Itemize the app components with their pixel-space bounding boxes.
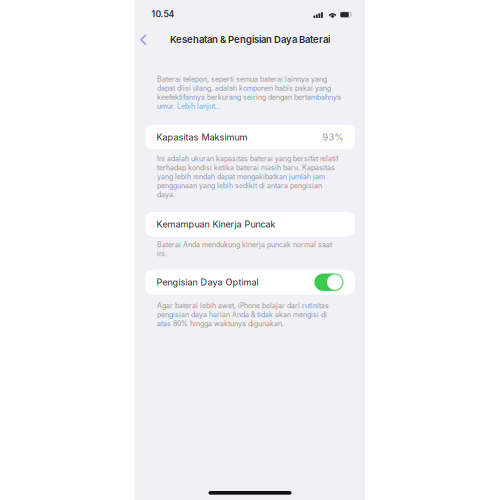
button[interactable]: Pengisian Daya Optimal: [314, 273, 343, 291]
staticText: Pengisian Daya Optimal: [157, 277, 259, 288]
staticText: Baterai Anda mendukung kinerja puncak no…: [157, 240, 332, 258]
staticText: 10.54: [151, 9, 174, 19]
staticText: Agar baterai lebih awet, iPhone belajar …: [157, 301, 329, 328]
button[interactable]: Kemampuan Kinerja Puncak: [135, 212, 365, 236]
staticText: Kemampuan Kinerja Puncak: [157, 219, 276, 230]
button[interactable]: Back: [133, 27, 154, 49]
staticText: Kesehatan & Pengisian Daya Baterai: [170, 34, 330, 45]
button[interactable]: Pengisian Daya Optimal: [135, 270, 365, 294]
button[interactable]: Kapasitas Maksimum: [135, 125, 365, 149]
staticText: Ini adalah ukuran kapasitas baterai yang…: [157, 155, 339, 199]
staticText: Kapasitas Maksimum: [157, 132, 248, 143]
staticText: Baterai telepon, seperti semua baterai l…: [157, 75, 341, 110]
staticText: 93%: [322, 132, 343, 143]
